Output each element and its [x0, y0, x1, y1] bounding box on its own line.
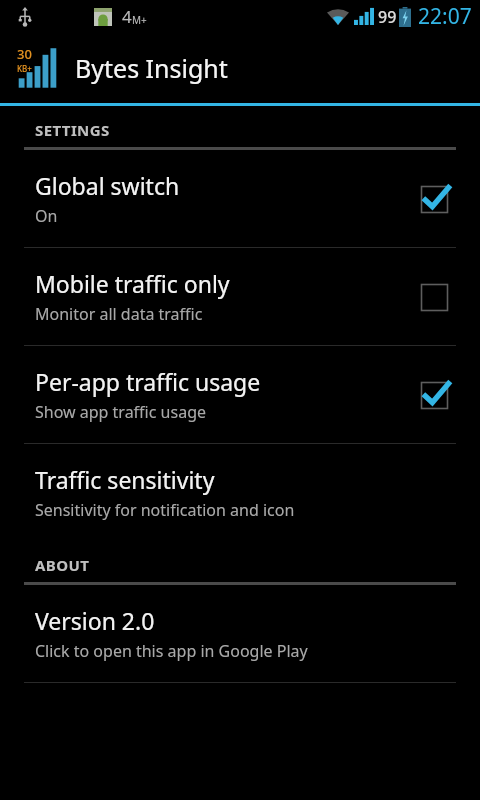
button[interactable]: Unchecked — [412, 275, 456, 319]
staticText: Click to open this app in Google Play — [35, 640, 308, 662]
button[interactable]: Mobile traffic only — [0, 248, 480, 345]
staticText: Bytes Insight — [75, 51, 228, 85]
staticText: Traffic sensitivity — [35, 464, 215, 495]
staticText: M+ — [132, 13, 147, 27]
button[interactable]: Checked — [412, 177, 456, 221]
staticText: 22:07 — [418, 2, 472, 31]
staticText: Sensitivity for notification and icon — [35, 499, 295, 521]
button[interactable]: Version 2.0 — [0, 585, 480, 682]
button[interactable]: Global switch — [0, 150, 480, 247]
staticText: Monitor all data traffic — [35, 303, 203, 325]
staticText: SETTINGS — [35, 120, 110, 140]
staticText: Per-app traffic usage — [35, 366, 261, 397]
staticText: Show app traffic usage — [35, 401, 206, 423]
staticText: 4 — [122, 5, 132, 28]
staticText: On — [35, 205, 58, 227]
staticText: Version 2.0 — [35, 605, 155, 636]
staticText: ABOUT — [35, 555, 90, 575]
button[interactable]: Per-app traffic usage — [0, 346, 480, 443]
staticText: Global switch — [35, 170, 180, 201]
button[interactable]: Traffic sensitivity — [0, 444, 480, 541]
staticText: 30 — [17, 45, 32, 63]
staticText: KB+ — [17, 63, 32, 74]
staticText: 99 — [378, 6, 397, 28]
button[interactable]: Checked — [412, 373, 456, 417]
staticText: Mobile traffic only — [35, 268, 230, 299]
